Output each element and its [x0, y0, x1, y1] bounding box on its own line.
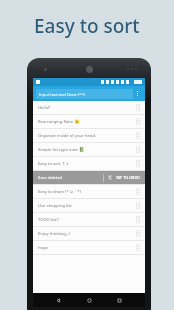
staticText: Simple list type note 📗	[38, 147, 136, 153]
staticText: TAP TO UNDO	[116, 175, 140, 180]
button[interactable]: TAP TO UNDO	[108, 175, 140, 180]
button[interactable]: Organize inside of your head.	[33, 129, 145, 142]
button[interactable]: Enjoy thinking;-)	[33, 227, 145, 240]
staticText: hoge	[38, 245, 136, 251]
staticText: Input text and Done (^^)	[39, 92, 85, 97]
staticText: Hello!!	[38, 105, 136, 111]
button[interactable]: Easy to share (*´ω｀*)	[33, 185, 145, 198]
staticText: Enjoy thinking;-)	[38, 231, 136, 237]
button[interactable]: Hello!!	[33, 101, 145, 114]
button[interactable]: Home	[84, 295, 95, 306]
staticText: Easy to sort ↑↓	[38, 161, 136, 167]
button[interactable]: TODO list!!	[33, 213, 145, 226]
button[interactable]: hoge	[33, 241, 145, 254]
staticText: TODO list!!	[38, 217, 136, 223]
staticText: Rearranging Note 🙂	[38, 119, 136, 125]
staticText: Use shopping list	[38, 203, 136, 209]
button[interactable]: More options	[133, 86, 142, 101]
button[interactable]: Back	[53, 295, 64, 306]
button[interactable]: Easy to sort ↑↓	[33, 157, 145, 170]
staticText: Organize inside of your head.	[38, 133, 136, 139]
button[interactable]: Rearranging Note 🙂	[33, 115, 145, 128]
staticText: Easy to sort	[34, 13, 140, 39]
staticText: Easy to share (*´ω｀*)	[38, 189, 136, 195]
button[interactable]: Input text and Done (^^)	[36, 89, 133, 99]
button[interactable]: Recent apps	[114, 295, 125, 306]
button[interactable]: Use shopping list	[33, 199, 145, 212]
button[interactable]: Simple list type note 📗	[33, 143, 145, 156]
staticText: Item deleted	[38, 175, 62, 180]
